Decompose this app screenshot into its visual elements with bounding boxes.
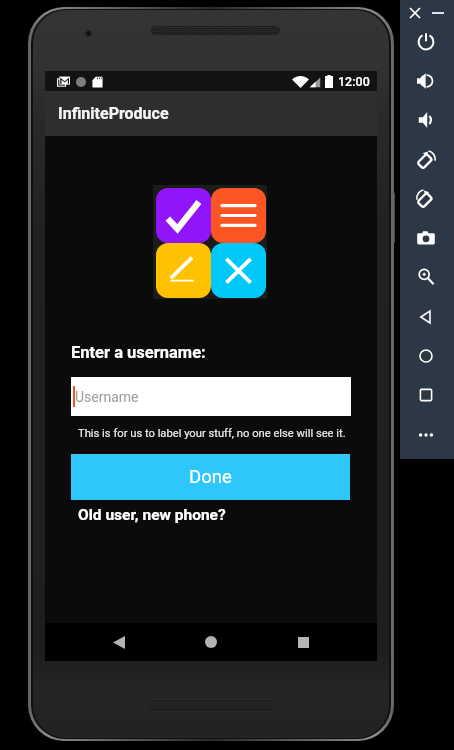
button[interactable]: Zoom [413, 264, 439, 290]
button[interactable]: Overview [413, 382, 439, 408]
staticText: Username [75, 389, 139, 405]
button[interactable]: Rotate left [413, 186, 439, 212]
button[interactable]: Home [413, 343, 439, 369]
staticText: Done [189, 466, 232, 488]
button[interactable]: More [413, 422, 439, 448]
button[interactable]: Power [413, 29, 439, 55]
staticText: 12:00 [338, 74, 370, 89]
button[interactable]: Home [189, 623, 233, 661]
button[interactable]: Username [71, 377, 351, 416]
button[interactable]: Back [97, 623, 141, 661]
button[interactable]: Take screenshot [413, 225, 439, 251]
button[interactable]: Volume up [413, 68, 439, 94]
button[interactable]: Volume down [413, 107, 439, 133]
button[interactable]: Minimize [430, 5, 446, 21]
button[interactable]: Back [413, 304, 439, 330]
button[interactable]: Rotate right [413, 147, 439, 173]
button[interactable]: Done [71, 454, 350, 500]
staticText: Enter a username: [71, 343, 206, 362]
button[interactable]: Close [407, 5, 423, 21]
button[interactable]: Recent apps [281, 623, 325, 661]
staticText: Old user, new phone? [78, 506, 226, 524]
button[interactable]: Old user, new phone? [78, 506, 226, 524]
staticText: This is for us to label your stuff, no o… [78, 427, 346, 440]
staticText: InfiniteProduce [58, 104, 169, 123]
